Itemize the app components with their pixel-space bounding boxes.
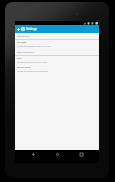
- staticText: LOCALIZATION: [17, 35, 30, 37]
- staticText: Change the language of the voice output: [17, 45, 51, 47]
- staticText: Language: [17, 41, 27, 44]
- staticText: Change the pitch of the voice output: [17, 61, 48, 63]
- staticText: Pitch: [17, 57, 22, 60]
- staticText: Change the speed of the voice output: [17, 70, 49, 72]
- button[interactable]: Navigate up: [16, 25, 20, 33]
- button[interactable]: Home: [51, 150, 63, 158]
- button[interactable]: Speech speed: [15, 65, 99, 74]
- staticText: VOICE AND SPEECH: [17, 51, 34, 53]
- button[interactable]: Recent apps: [75, 150, 87, 158]
- button[interactable]: Language: [15, 40, 99, 49]
- button[interactable]: Pitch: [15, 56, 99, 65]
- staticText: Settings: [26, 27, 37, 31]
- staticText: Speech speed: [17, 66, 31, 69]
- button[interactable]: Back: [27, 150, 39, 158]
